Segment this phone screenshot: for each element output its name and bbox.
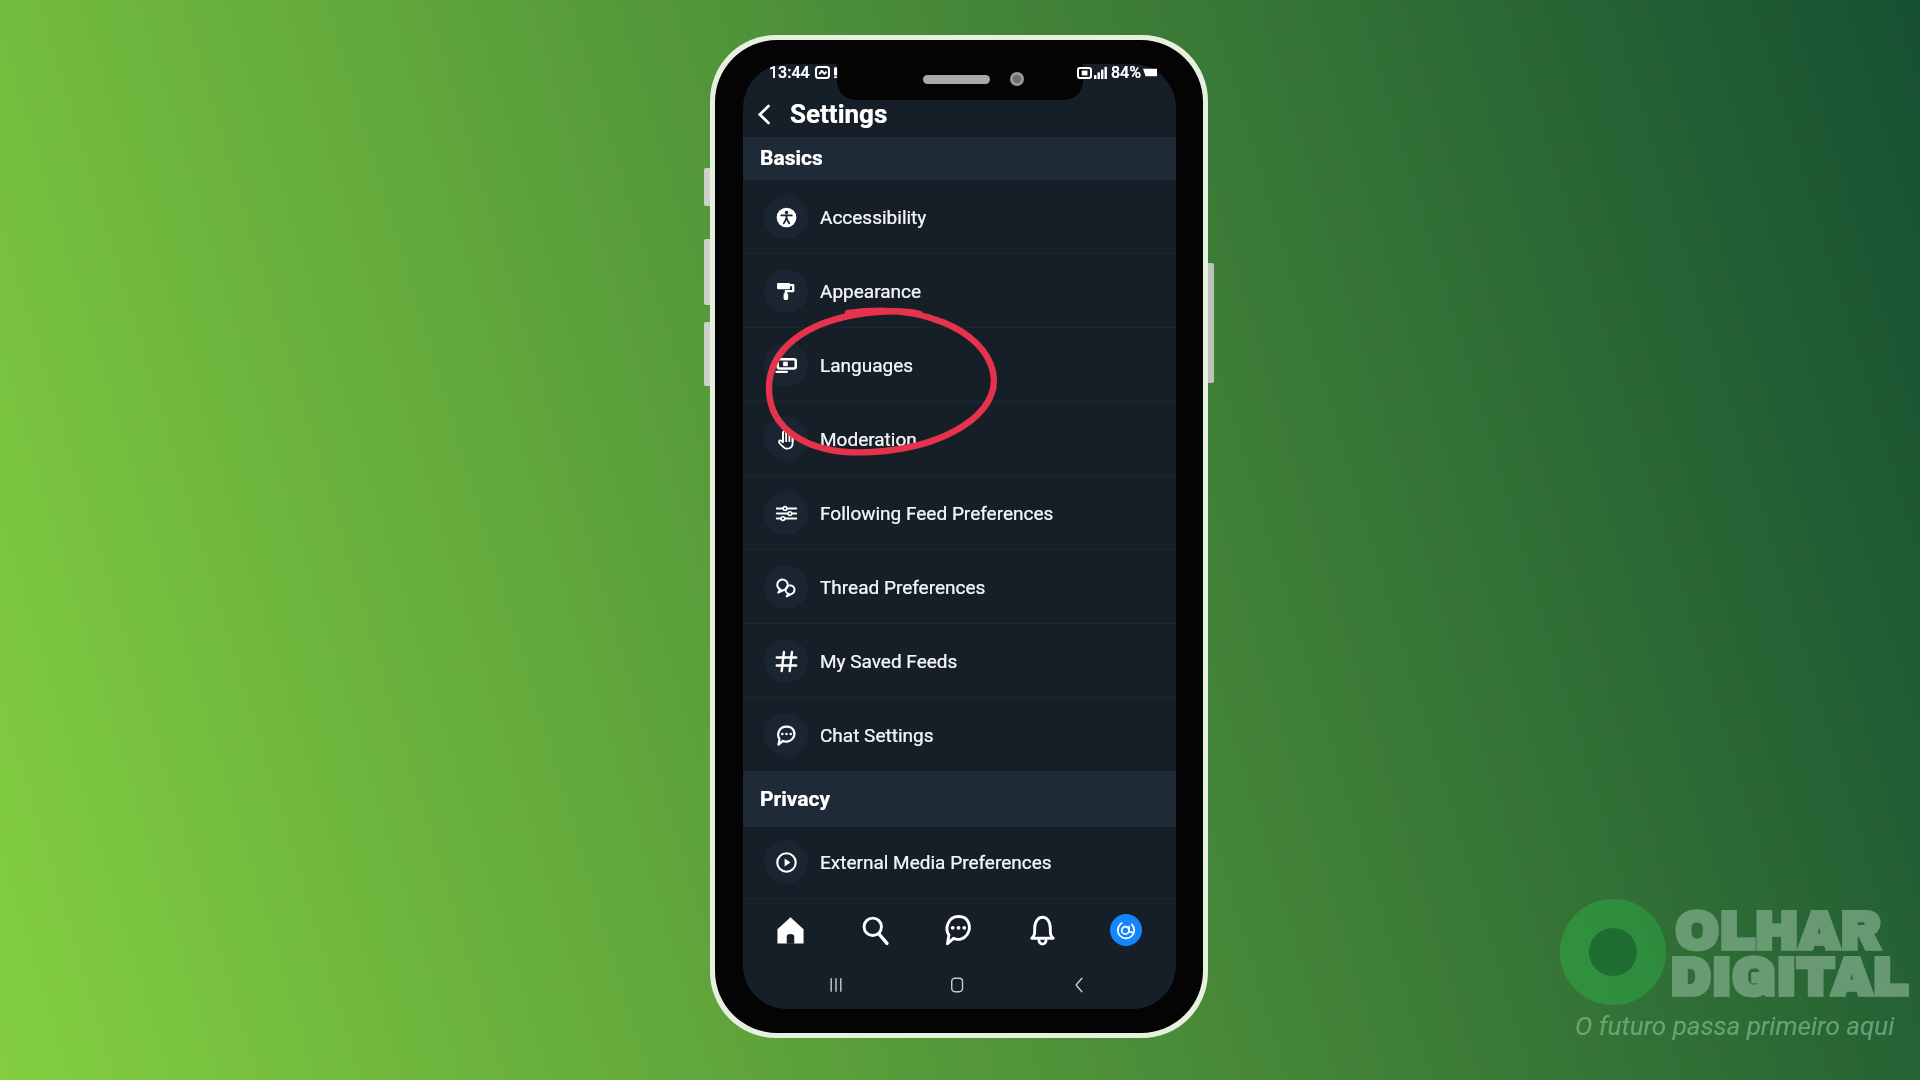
button[interactable]: Languages (743, 328, 1176, 401)
staticText: Settings (790, 99, 888, 129)
staticText: Appearance (820, 280, 922, 302)
button[interactable]: Back (1018, 960, 1140, 1009)
staticText: Chat Settings (820, 724, 934, 746)
staticText: Basics (760, 146, 823, 171)
button[interactable]: Following Feed Preferences (743, 476, 1176, 549)
staticText: Thread Preferences (820, 576, 986, 598)
button[interactable]: External Media Preferences (743, 827, 1176, 897)
button[interactable]: Search (832, 899, 916, 960)
staticText: Languages (820, 354, 914, 376)
button[interactable]: Back (750, 100, 778, 128)
button[interactable]: Home (748, 899, 832, 960)
staticText: 84% (1111, 63, 1141, 82)
button[interactable]: Accessibility (743, 180, 1176, 253)
button[interactable]: Chat Settings (743, 698, 1176, 771)
staticText: 13:44 (769, 63, 810, 82)
staticText: Following Feed Preferences (820, 502, 1054, 524)
button[interactable]: Notifications (1000, 899, 1084, 960)
button[interactable]: Home (896, 960, 1018, 1009)
staticText: OLHAR (1674, 903, 1881, 961)
button[interactable]: My Saved Feeds (743, 624, 1176, 697)
button[interactable]: Profile (1084, 899, 1168, 960)
staticText: Privacy (760, 787, 831, 812)
staticText: Accessibility (820, 206, 927, 228)
button[interactable]: Messages (916, 899, 1000, 960)
button[interactable]: Recents (775, 960, 896, 1009)
staticText: External Media Preferences (820, 851, 1052, 873)
staticText: O futuro passa primeiro aqui (1575, 1011, 1895, 1041)
button[interactable]: Moderation (743, 402, 1176, 475)
staticText: My Saved Feeds (820, 650, 958, 672)
staticText: DIGITAL (1669, 949, 1907, 1007)
button[interactable]: Thread Preferences (743, 550, 1176, 623)
staticText: Moderation (820, 428, 917, 450)
button[interactable]: Appearance (743, 254, 1176, 327)
